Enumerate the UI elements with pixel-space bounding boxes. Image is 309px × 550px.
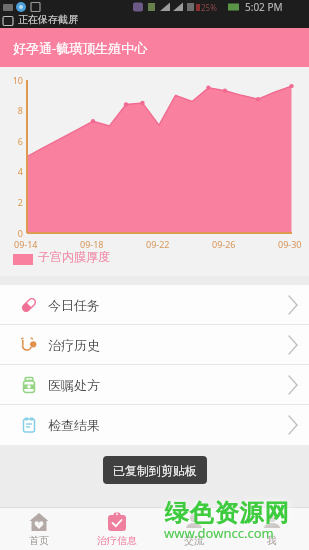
staticText: 4 <box>0 165 23 177</box>
staticText: 8 <box>0 104 23 116</box>
button[interactable]: 医嘱处方 <box>0 365 309 405</box>
staticText: 正在保存截屏 <box>18 13 78 26</box>
staticText: 09-18 <box>80 238 104 250</box>
button[interactable]: 交流 <box>155 507 232 550</box>
staticText: 交流 <box>184 534 204 547</box>
staticText: 医嘱处方 <box>48 377 100 393</box>
staticText: 治疗历史 <box>48 337 100 353</box>
staticText: 子宫内膜厚度 <box>38 249 110 264</box>
staticText: 今日任务 <box>48 297 100 313</box>
button[interactable]: 我 <box>233 507 309 550</box>
staticText: 已复制到剪贴板 <box>113 463 197 478</box>
staticText: 好孕通-毓璜顶生殖中心 <box>13 39 148 57</box>
staticText: 0 <box>0 227 23 239</box>
button[interactable]: 检查结果 <box>0 405 309 445</box>
button[interactable]: 今日任务 <box>0 285 309 325</box>
staticText: 10 <box>0 74 23 86</box>
button[interactable]: 首页 <box>0 507 77 550</box>
button[interactable]: 治疗信息 <box>78 507 155 550</box>
staticText: 绿色资源网 <box>164 498 289 528</box>
staticText: 治疗信息 <box>97 534 137 547</box>
staticText: 09-26 <box>212 238 236 250</box>
button[interactable]: 好孕通-毓璜顶生殖中心 <box>0 28 309 67</box>
staticText: 我 <box>267 534 277 547</box>
button[interactable]: 治疗历史 <box>0 325 309 365</box>
staticText: 首页 <box>29 534 49 547</box>
staticText: 25% <box>201 2 217 13</box>
staticText: 检查结果 <box>48 417 100 433</box>
staticText: 2 <box>0 196 23 208</box>
staticText: 09-30 <box>278 238 302 250</box>
staticText: 09-22 <box>146 238 170 250</box>
staticText: 6 <box>0 135 23 147</box>
staticText: www.downcc.com <box>164 524 274 542</box>
staticText: 5:02 PM <box>245 0 283 14</box>
staticText: 09-14 <box>14 238 38 250</box>
